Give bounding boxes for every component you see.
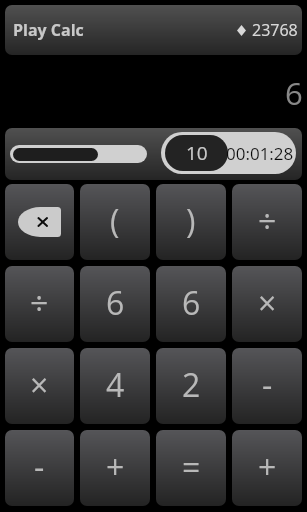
staticText: 6 — [182, 281, 201, 325]
staticText: ) — [186, 199, 196, 243]
staticText: × — [30, 363, 49, 407]
staticText: 6 — [106, 281, 125, 325]
staticText: - — [262, 363, 273, 407]
button[interactable]: + — [80, 430, 150, 506]
staticText: Play Calc — [13, 19, 84, 41]
staticText: 6 — [285, 72, 303, 114]
staticText: 10 — [186, 140, 208, 166]
button[interactable]: 6 — [156, 266, 226, 342]
button[interactable]: - — [5, 430, 74, 506]
staticText: = — [182, 445, 201, 489]
staticText: ÷ — [258, 199, 277, 243]
staticText: 00:01:28 — [226, 142, 294, 165]
button[interactable]: + — [232, 430, 302, 506]
button[interactable]: 4 — [80, 348, 150, 424]
button[interactable]: Play Calc — [5, 5, 302, 55]
button[interactable]: - — [232, 348, 302, 424]
button[interactable]: Backspace — [18, 207, 61, 237]
button[interactable]: 10 — [161, 132, 296, 174]
staticText: - — [34, 445, 45, 489]
staticText: × — [258, 281, 277, 325]
staticText: ( — [110, 199, 120, 243]
button[interactable]: 2 — [156, 348, 226, 424]
staticText: 4 — [106, 363, 125, 407]
button[interactable]: ÷ — [232, 184, 302, 260]
button[interactable]: × — [232, 266, 302, 342]
staticText: + — [258, 445, 277, 489]
staticText: 2 — [182, 363, 201, 407]
button[interactable]: ÷ — [5, 266, 74, 342]
button[interactable]: ( — [80, 184, 150, 260]
button[interactable]: × — [5, 348, 74, 424]
staticText: ÷ — [30, 281, 49, 325]
button[interactable]: ) — [156, 184, 226, 260]
button[interactable]: 6 — [80, 266, 150, 342]
staticText: 23768 — [252, 19, 298, 41]
button[interactable]: Backspace — [5, 184, 74, 260]
staticText: + — [106, 445, 125, 489]
button[interactable]: = — [156, 430, 226, 506]
